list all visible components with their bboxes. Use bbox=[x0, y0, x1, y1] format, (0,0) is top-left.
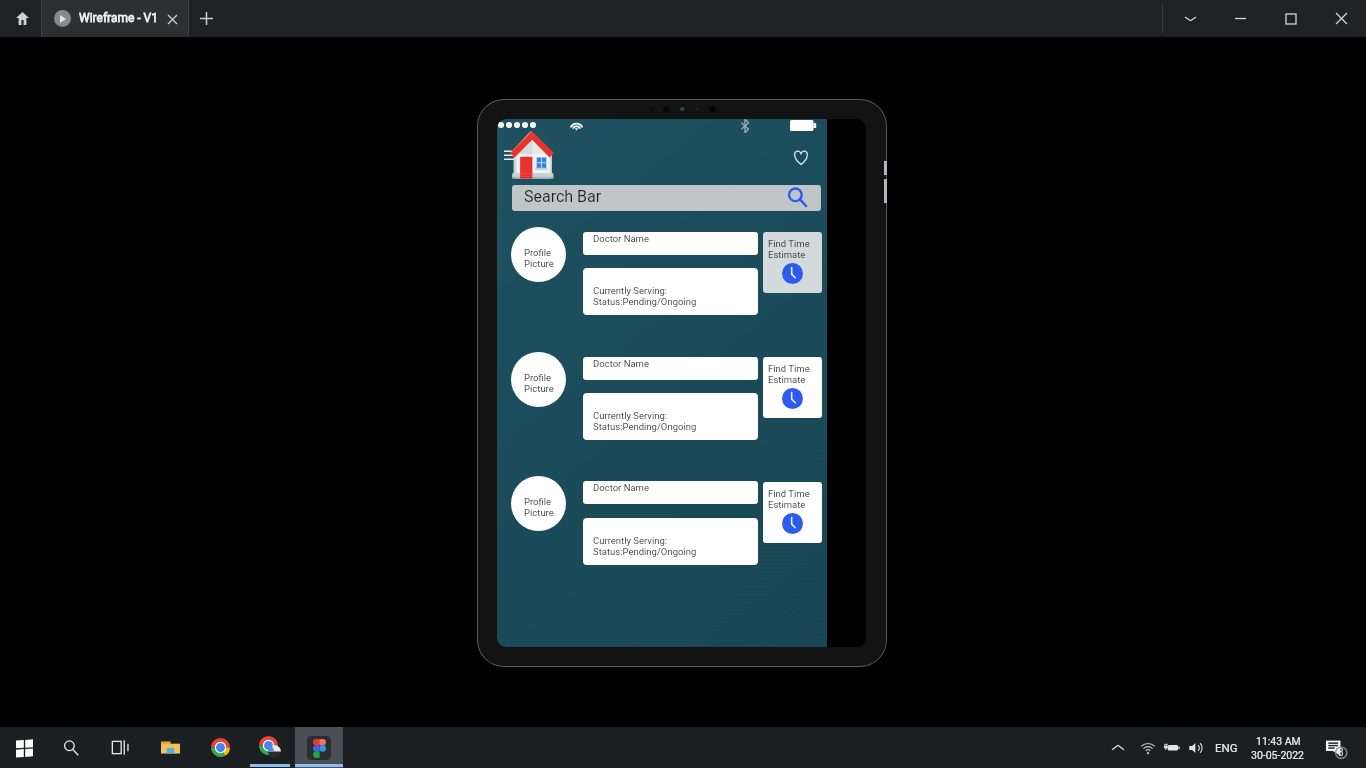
button[interactable]: Find Time bbox=[763, 357, 822, 418]
button[interactable]: 11:43 AM bbox=[1246, 727, 1310, 768]
button[interactable]: Doctor Name bbox=[583, 232, 758, 255]
button[interactable]: Search bbox=[47, 727, 95, 768]
staticText: Estimate bbox=[768, 499, 806, 510]
staticText: 3 bbox=[1338, 747, 1344, 759]
button[interactable]: Chrome Beta bbox=[246, 727, 294, 768]
button[interactable]: Doctor Name bbox=[583, 357, 758, 380]
staticText: Estimate bbox=[768, 249, 806, 260]
staticText: Currently Serving: bbox=[593, 410, 668, 421]
button[interactable]: Start bbox=[0, 727, 48, 768]
staticText: Status:Pending/Ongoing bbox=[593, 546, 697, 557]
staticText: Doctor Name bbox=[593, 233, 649, 244]
button[interactable]: ENG bbox=[1209, 727, 1243, 768]
button[interactable]: Profile bbox=[511, 227, 566, 282]
button[interactable]: Chrome bbox=[196, 727, 244, 768]
staticText: Currently Serving: bbox=[593, 285, 668, 296]
button[interactable]: Favorites bbox=[789, 145, 813, 169]
button[interactable]: Search Bar bbox=[512, 185, 821, 211]
button[interactable]: Volume bbox=[1172, 727, 1220, 768]
button[interactable]: New tab bbox=[193, 5, 219, 31]
staticText: Find Time bbox=[768, 363, 810, 374]
staticText: Doctor Name bbox=[593, 482, 649, 493]
button[interactable]: Figma bbox=[295, 727, 343, 768]
staticText: 30-05-2022 bbox=[1251, 749, 1305, 761]
button[interactable]: Currently Serving: bbox=[583, 518, 758, 565]
staticText: 11:43 AM bbox=[1256, 735, 1301, 747]
button[interactable]: Currently Serving: bbox=[583, 268, 758, 315]
staticText: Find Time bbox=[768, 488, 810, 499]
button[interactable]: Minimize to tray bbox=[1172, 0, 1208, 37]
button[interactable]: Close bbox=[1323, 0, 1359, 37]
staticText: Picture bbox=[524, 507, 554, 518]
button[interactable]: Doctor Name bbox=[583, 481, 758, 504]
button[interactable]: Currently Serving: bbox=[583, 393, 758, 440]
staticText: Status:Pending/Ongoing bbox=[593, 296, 697, 307]
staticText: Doctor Name bbox=[593, 358, 649, 369]
button[interactable]: Home bbox=[3, 0, 41, 37]
button[interactable]: Find Time bbox=[763, 482, 822, 543]
button[interactable]: Profile bbox=[511, 352, 566, 407]
staticText: Estimate bbox=[768, 374, 806, 385]
staticText: Profile bbox=[524, 496, 552, 507]
staticText: Find Time bbox=[768, 238, 810, 249]
staticText: Search Bar bbox=[524, 187, 602, 206]
staticText: Status:Pending/Ongoing bbox=[593, 421, 697, 432]
staticText: Picture bbox=[524, 383, 554, 394]
button[interactable]: File Explorer bbox=[146, 727, 194, 768]
staticText: Profile bbox=[524, 372, 552, 383]
button[interactable]: Network bbox=[1124, 727, 1172, 768]
button[interactable]: Battery bbox=[1148, 727, 1196, 768]
button[interactable]: Notifications bbox=[1316, 727, 1354, 768]
staticText: Profile bbox=[524, 247, 552, 258]
button[interactable]: Profile bbox=[511, 476, 566, 531]
button[interactable]: Maximize bbox=[1273, 0, 1309, 37]
button[interactable]: Minimize bbox=[1222, 0, 1258, 37]
button[interactable]: Close tab bbox=[163, 10, 181, 28]
staticText: Wireframe - V1 bbox=[79, 11, 158, 25]
staticText: ENG bbox=[1215, 741, 1238, 754]
button[interactable]: Task view bbox=[96, 727, 144, 768]
button[interactable]: Find Time bbox=[763, 232, 822, 293]
staticText: Currently Serving: bbox=[593, 535, 668, 546]
staticText: Picture bbox=[524, 258, 554, 269]
button[interactable]: Wireframe - V1 bbox=[41, 0, 189, 37]
button[interactable]: Show hidden icons bbox=[1103, 727, 1133, 768]
